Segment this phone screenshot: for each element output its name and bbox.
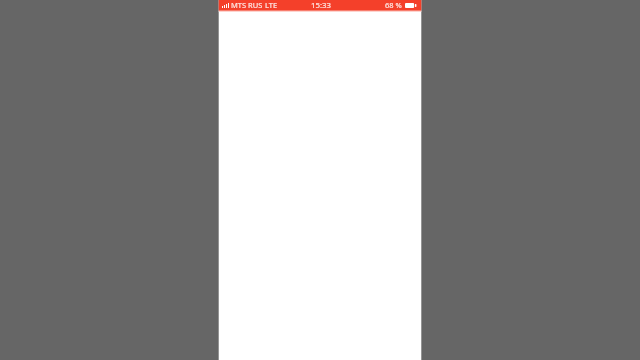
- staticText: LTE: [265, 0, 278, 10]
- staticText: 15:33: [311, 0, 331, 10]
- other: Mobile signal strength: [222, 3, 229, 8]
- staticText: MTS RUS: [231, 0, 263, 10]
- other: Battery 68 percent: [405, 3, 418, 8]
- staticText: 68 %: [385, 0, 402, 10]
